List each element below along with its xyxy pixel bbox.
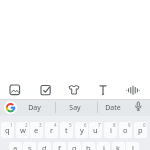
staticText: 2 (25, 122, 28, 128)
staticText: 3 (39, 122, 42, 128)
button[interactable]: s (23, 142, 36, 150)
staticText: k (116, 143, 121, 150)
staticText: o (123, 125, 128, 135)
staticText: 7 (98, 122, 101, 128)
staticText: l (132, 143, 134, 150)
button[interactable]: f (53, 142, 66, 150)
staticText: w (20, 125, 26, 135)
staticText: a (13, 143, 18, 150)
staticText: 4 (54, 122, 57, 128)
button[interactable]: i (104, 122, 117, 138)
staticText: 6 (84, 122, 87, 128)
button[interactable]: Date (97, 99, 129, 116)
button[interactable]: u (89, 122, 102, 138)
button[interactable] (131, 100, 145, 114)
button[interactable]: y (75, 122, 88, 138)
staticText: s (28, 143, 32, 150)
staticText: 9 (128, 122, 131, 128)
button[interactable]: p (134, 122, 147, 138)
button[interactable]: t (60, 122, 73, 138)
staticText: Say (69, 103, 81, 113)
button[interactable]: r (45, 122, 58, 138)
button[interactable]: l (126, 142, 139, 150)
button[interactable]: Say (60, 99, 90, 116)
button[interactable] (67, 83, 81, 97)
staticText: e (34, 125, 39, 135)
button[interactable]: o (119, 122, 132, 138)
staticText: 5 (69, 122, 72, 128)
button[interactable]: e (30, 122, 43, 138)
button[interactable]: a (9, 142, 22, 150)
button[interactable] (39, 83, 53, 97)
button[interactable]: q (1, 122, 14, 138)
button[interactable]: Day (18, 99, 51, 116)
button[interactable] (8, 83, 22, 97)
staticText: y (80, 125, 84, 135)
button[interactable] (126, 83, 140, 97)
button[interactable] (96, 83, 110, 97)
button[interactable]: j (97, 142, 110, 150)
button[interactable]: w (16, 122, 29, 138)
button[interactable]: k (112, 142, 125, 150)
button[interactable] (4, 101, 17, 114)
button[interactable]: g (68, 142, 81, 150)
staticText: f (58, 143, 61, 150)
staticText: i (110, 125, 112, 135)
staticText: Date (105, 103, 121, 113)
staticText: 0 (143, 122, 146, 128)
staticText: t (65, 125, 68, 135)
staticText: j (103, 143, 105, 150)
staticText: 8 (113, 122, 116, 128)
staticText: Day (28, 103, 41, 113)
staticText: g (72, 143, 77, 150)
staticText: d (42, 143, 47, 150)
staticText: 1 (10, 122, 13, 128)
staticText: q (5, 125, 10, 135)
staticText: p (138, 125, 143, 135)
button[interactable]: h (82, 142, 95, 150)
staticText: r (50, 125, 54, 135)
staticText: u (93, 125, 98, 135)
button[interactable]: d (38, 142, 51, 150)
staticText: h (86, 143, 91, 150)
